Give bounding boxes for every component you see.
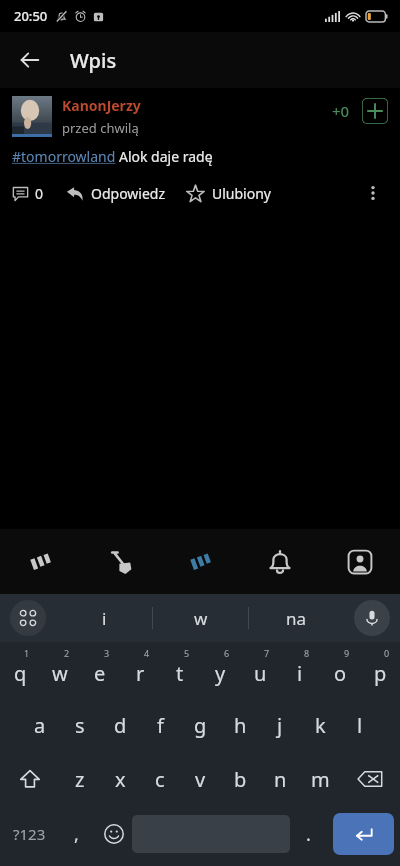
button[interactable]: Emoji xyxy=(95,806,132,862)
staticText: 2 xyxy=(64,647,70,659)
button[interactable]: d xyxy=(100,698,140,752)
button[interactable]: s xyxy=(60,698,100,752)
staticText: z xyxy=(75,766,85,793)
staticText: na xyxy=(286,607,307,630)
button[interactable]: Keyboard settings xyxy=(10,600,46,636)
button[interactable]: g xyxy=(180,698,220,752)
button[interactable]: j xyxy=(260,698,300,752)
button[interactable]: a xyxy=(20,698,60,752)
button[interactable]: h xyxy=(220,698,260,752)
staticText: #tomorrowland Alok daje radę xyxy=(12,147,213,166)
button[interactable]: Notifications xyxy=(240,529,320,594)
staticText: 20:50 xyxy=(14,7,48,25)
staticText: ?123 xyxy=(13,824,46,844)
button[interactable]: f xyxy=(140,698,180,752)
button[interactable]: b xyxy=(220,752,260,806)
button[interactable]: . xyxy=(290,806,327,862)
staticText: h xyxy=(234,712,247,739)
button[interactable]: Backspace xyxy=(340,752,400,806)
staticText: b xyxy=(234,766,247,793)
button[interactable]: Ulubiony xyxy=(186,182,271,205)
button[interactable]: 3 xyxy=(80,642,120,698)
staticText: 1 xyxy=(24,647,30,659)
button[interactable]: Wykop xyxy=(160,529,240,594)
button[interactable]: 9 xyxy=(320,642,360,698)
button[interactable]: i xyxy=(56,594,152,642)
staticText: t xyxy=(176,660,184,687)
staticText: d xyxy=(114,712,127,739)
staticText: 6 xyxy=(224,647,230,659)
staticText: q xyxy=(14,660,27,687)
button[interactable]: 6 xyxy=(200,642,240,698)
staticText: v xyxy=(195,766,206,793)
staticText: g xyxy=(194,712,207,739)
staticText: m xyxy=(311,766,330,793)
button[interactable]: n xyxy=(260,752,300,806)
button[interactable]: Home xyxy=(0,529,80,594)
button[interactable]: Dig xyxy=(80,529,160,594)
staticText: l xyxy=(357,712,363,739)
button[interactable]: w xyxy=(153,594,248,642)
staticText: . xyxy=(306,822,311,847)
button[interactable]: Odpowiedz xyxy=(66,182,166,205)
button[interactable]: z xyxy=(60,752,100,806)
staticText: KanonJerzy xyxy=(62,96,141,115)
staticText: c xyxy=(155,766,165,793)
button[interactable]: 2 xyxy=(40,642,80,698)
staticText: a xyxy=(34,712,46,739)
staticText: i xyxy=(297,660,303,687)
staticText: 0 xyxy=(384,647,390,659)
button[interactable]: Shift xyxy=(0,752,60,806)
button[interactable]: x xyxy=(100,752,140,806)
staticText: w xyxy=(52,660,68,687)
button[interactable]: Enter xyxy=(333,813,394,855)
button[interactable]: k xyxy=(300,698,340,752)
staticText: Wpis xyxy=(70,47,117,74)
button[interactable]: l xyxy=(340,698,380,752)
staticText: 3 xyxy=(104,647,110,659)
staticText: Ulubiony xyxy=(212,184,271,203)
button[interactable]: , xyxy=(58,806,95,862)
button[interactable]: 0 xyxy=(360,642,400,698)
button[interactable]: m xyxy=(300,752,340,806)
button[interactable]: Profile xyxy=(320,529,400,594)
staticText: przed chwilą xyxy=(62,119,139,137)
staticText: k xyxy=(315,712,326,739)
staticText: p xyxy=(374,660,387,687)
button[interactable]: 7 xyxy=(240,642,280,698)
button[interactable]: 4 xyxy=(120,642,160,698)
staticText: f xyxy=(157,712,164,739)
staticText: 4 xyxy=(144,647,150,659)
staticText: e xyxy=(94,660,106,687)
staticText: 9 xyxy=(344,647,350,659)
button[interactable]: 5 xyxy=(160,642,200,698)
staticText: 8 xyxy=(304,647,310,659)
button[interactable]: More options xyxy=(358,178,388,208)
staticText: +0 xyxy=(332,101,350,121)
button[interactable]: ?123 xyxy=(0,806,58,862)
staticText: 0 xyxy=(35,184,44,203)
staticText: j xyxy=(277,712,283,739)
staticText: u xyxy=(254,660,267,687)
staticText: 5 xyxy=(184,647,190,659)
staticText: 7 xyxy=(264,647,270,659)
button[interactable]: Back xyxy=(8,38,52,82)
staticText: s xyxy=(75,712,85,739)
button[interactable]: Plus xyxy=(362,98,388,124)
button[interactable]: 0 xyxy=(12,182,44,205)
staticText: y xyxy=(215,660,226,687)
staticText: x xyxy=(115,766,126,793)
staticText: w xyxy=(194,607,208,630)
button[interactable]: v xyxy=(180,752,220,806)
button[interactable]: Voice input xyxy=(354,600,390,636)
button[interactable]: 1 xyxy=(0,642,40,698)
staticText: , xyxy=(74,822,79,847)
staticText: Odpowiedz xyxy=(91,184,166,203)
button[interactable]: 8 xyxy=(280,642,320,698)
button[interactable]: na xyxy=(249,594,344,642)
staticText: n xyxy=(274,766,287,793)
button[interactable]: c xyxy=(140,752,180,806)
staticText: r xyxy=(136,660,145,687)
staticText: i xyxy=(102,607,107,630)
